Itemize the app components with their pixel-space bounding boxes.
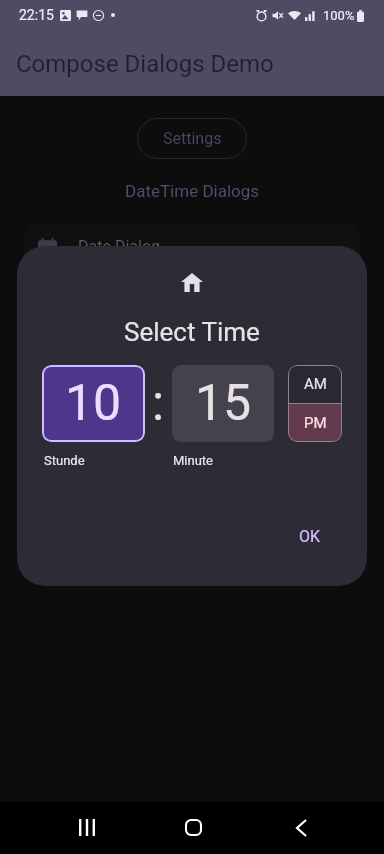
button[interactable]: Settings xyxy=(137,118,247,159)
button[interactable]: OK xyxy=(287,519,333,554)
staticText: Date Dialog xyxy=(78,237,160,256)
staticText: Select Time xyxy=(124,317,260,347)
button[interactable]: Date Dialog xyxy=(24,224,360,354)
staticText: Stunde xyxy=(44,453,85,468)
staticText: 22:15 xyxy=(19,7,54,23)
button[interactable]: AM xyxy=(288,365,342,403)
staticText: PM xyxy=(304,414,327,432)
button[interactable]: 15 xyxy=(172,365,274,442)
button[interactable]: PM xyxy=(288,404,342,442)
staticText: 10 xyxy=(65,374,122,433)
staticText: 15 xyxy=(195,374,252,433)
staticText: Minute xyxy=(173,453,214,468)
button[interactable]: Home xyxy=(169,803,218,852)
button[interactable]: Back xyxy=(277,803,326,852)
button[interactable]: 10 xyxy=(42,365,145,442)
staticText: DateTime Dialogs xyxy=(125,181,260,201)
staticText: OK xyxy=(299,527,321,546)
staticText: Settings xyxy=(163,129,222,148)
staticText: Compose Dialogs Demo xyxy=(16,50,274,78)
staticText: AM xyxy=(304,375,327,393)
staticText: 100% xyxy=(323,8,355,23)
button[interactable]: Recent apps xyxy=(62,803,111,852)
staticText: : xyxy=(152,374,165,433)
